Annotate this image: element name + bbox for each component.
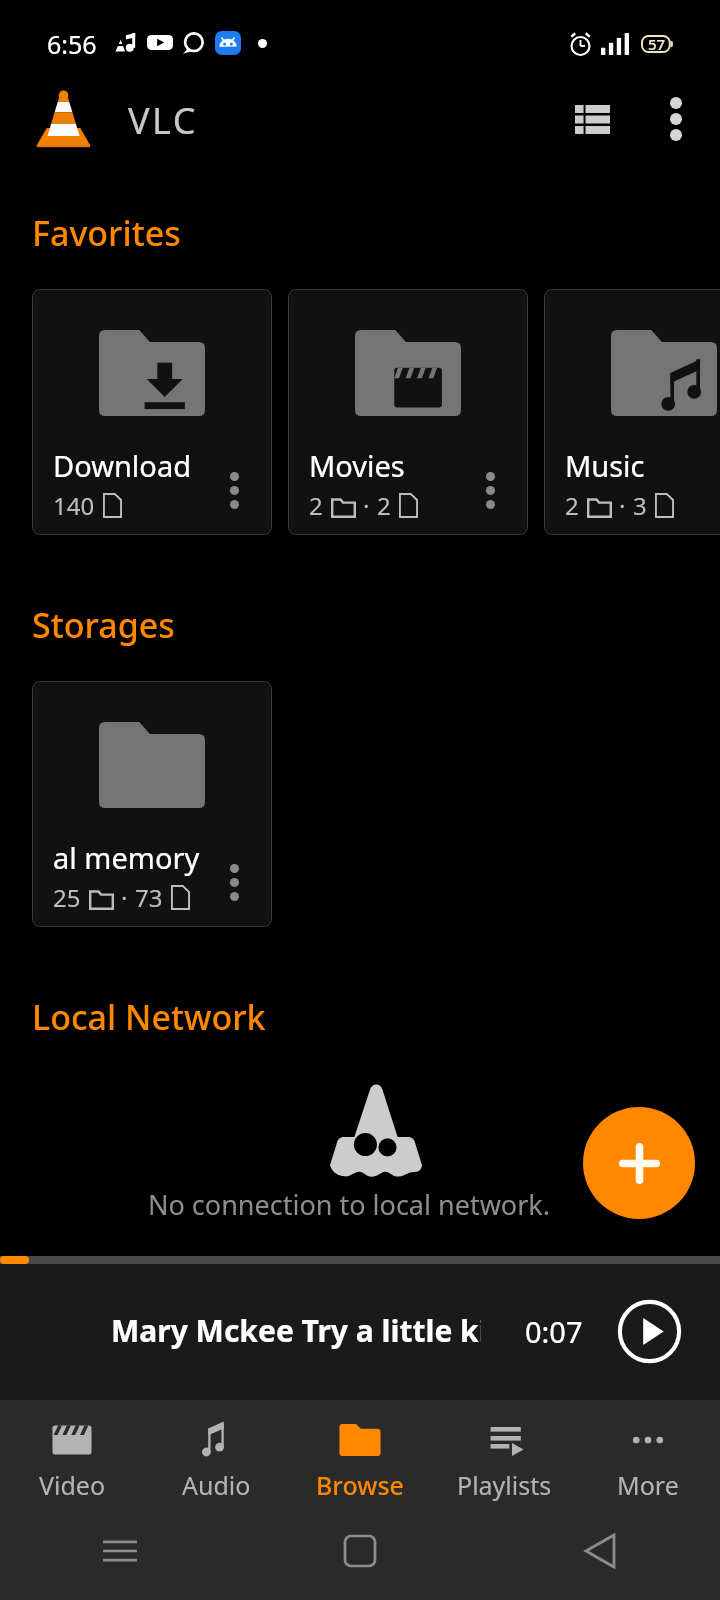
- button[interactable]: Playlists: [432, 1400, 576, 1502]
- staticText: Video: [39, 1468, 106, 1502]
- button[interactable]: More options for al memory: [211, 859, 257, 905]
- staticText: 73: [135, 881, 163, 914]
- staticText: Download: [53, 446, 191, 485]
- staticText: ·: [363, 489, 370, 522]
- button[interactable]: Display mode: [556, 83, 628, 155]
- staticText: ·: [121, 881, 128, 914]
- staticText: 25: [53, 881, 81, 914]
- button[interactable]: More options for Movies: [467, 467, 513, 513]
- button[interactable]: Video: [0, 1400, 144, 1502]
- staticText: al memory: [53, 838, 200, 877]
- button[interactable]: Recents: [0, 1502, 240, 1600]
- button[interactable]: Home: [240, 1502, 480, 1600]
- button[interactable]: Music: [544, 289, 720, 535]
- staticText: 140: [53, 489, 95, 522]
- button[interactable]: More options for Download: [211, 467, 257, 513]
- button[interactable]: More options: [640, 83, 712, 155]
- staticText: Movies: [309, 446, 405, 485]
- button[interactable]: Play: [608, 1290, 690, 1372]
- button[interactable]: Add network share: [583, 1107, 695, 1219]
- button[interactable]: Browse: [288, 1400, 432, 1502]
- staticText: 0:07: [525, 1312, 583, 1351]
- staticText: Browse: [316, 1468, 404, 1502]
- button[interactable]: Back: [480, 1502, 720, 1600]
- staticText: Local Network: [32, 994, 266, 1040]
- staticText: 6:56: [47, 27, 97, 61]
- button[interactable]: Mary Mckee Try a little kin: [0, 1264, 720, 1400]
- button[interactable]: al memory: [32, 681, 272, 927]
- staticText: Favorites: [32, 210, 181, 256]
- button[interactable]: Audio: [144, 1400, 288, 1502]
- button[interactable]: Movies: [288, 289, 528, 535]
- staticText: No connection to local network.: [148, 1186, 551, 1223]
- button[interactable]: Download: [32, 289, 272, 535]
- staticText: 2: [309, 489, 323, 522]
- staticText: VLC: [128, 96, 198, 145]
- staticText: Audio: [182, 1468, 251, 1502]
- staticText: ·: [619, 489, 626, 522]
- staticText: 2: [377, 489, 391, 522]
- button[interactable]: More: [576, 1400, 720, 1502]
- staticText: Music: [565, 446, 645, 485]
- staticText: More: [617, 1468, 679, 1502]
- staticText: 57: [648, 34, 666, 52]
- staticText: Storages: [32, 602, 175, 648]
- staticText: Mary Mckee Try a little kin: [111, 1310, 481, 1351]
- staticText: Playlists: [457, 1468, 552, 1502]
- staticText: 3: [633, 489, 647, 522]
- staticText: 2: [565, 489, 579, 522]
